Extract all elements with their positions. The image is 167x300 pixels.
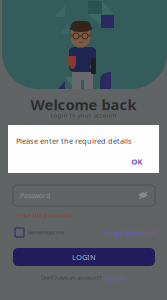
staticText: LOGIN [72,252,96,262]
staticText: Remember me [28,229,64,236]
button[interactable]: LOGIN [13,248,155,266]
staticText: Sign Up [105,274,126,281]
staticText: OK [131,156,142,167]
button[interactable]: Forgot password? [104,228,158,237]
staticText: Enter the password [17,211,72,219]
staticText: Don't have an account? [41,274,101,281]
staticText: Forgot password? [104,228,158,237]
staticText: Please enter the required details [16,136,132,146]
button[interactable]: Remember me [15,228,64,237]
staticText: Welcome back [30,94,136,114]
button[interactable]: Sign Up [105,274,126,281]
staticText: Password [20,191,50,200]
button[interactable]: OK [127,156,147,167]
button[interactable]: Password [13,185,155,206]
staticText: Login to your account [50,111,116,119]
